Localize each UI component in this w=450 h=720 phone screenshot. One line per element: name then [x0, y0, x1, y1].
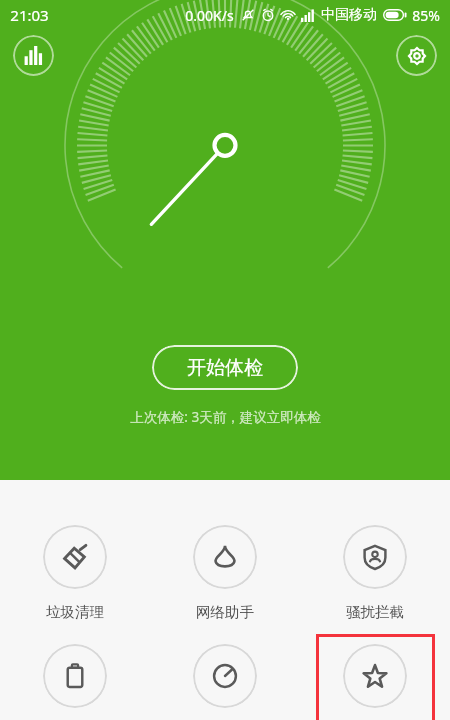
- staticText: 上次体检: 3天前，建议立即体检: [130, 408, 321, 426]
- staticText: 中国移动: [321, 6, 377, 24]
- staticText: 网络助手: [196, 603, 254, 621]
- staticText: 85%: [412, 6, 440, 25]
- button[interactable]: [300, 644, 450, 708]
- staticText: 骚扰拦截: [346, 603, 404, 621]
- staticText: 垃圾清理: [46, 603, 104, 621]
- staticText: 开始体检: [187, 356, 263, 380]
- button[interactable]: Statistics: [13, 35, 54, 76]
- button[interactable]: 开始体检: [152, 345, 298, 390]
- button[interactable]: 骚扰拦截: [300, 525, 450, 621]
- staticText: 0.00K/s: [185, 6, 234, 25]
- button[interactable]: Settings: [396, 35, 437, 76]
- button[interactable]: 网络助手: [150, 525, 300, 621]
- button[interactable]: [150, 644, 300, 708]
- staticText: 21:03: [10, 5, 49, 25]
- button[interactable]: 垃圾清理: [0, 525, 150, 621]
- button[interactable]: [0, 644, 150, 708]
